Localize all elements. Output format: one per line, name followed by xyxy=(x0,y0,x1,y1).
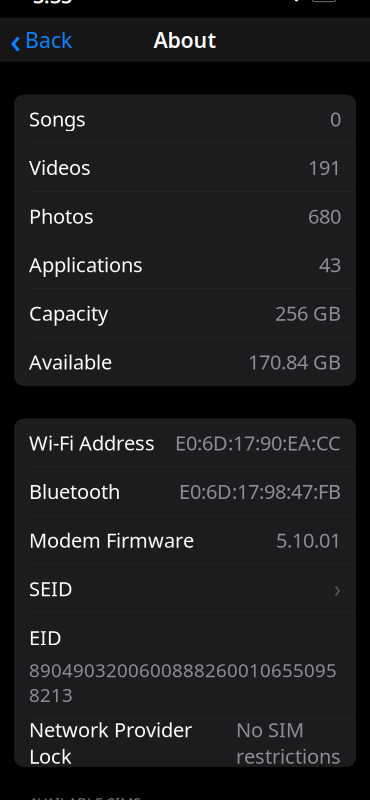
staticText: About xyxy=(153,25,216,54)
staticText: 3:33 xyxy=(33,0,72,9)
staticText: 43 xyxy=(319,251,341,278)
button[interactable]: Bluetooth xyxy=(14,467,356,515)
button[interactable]: Songs xyxy=(14,95,356,143)
staticText: 256 GB xyxy=(275,300,341,326)
staticText: E0:6D:17:90:EA:CC xyxy=(175,429,341,456)
button[interactable]: Capacity xyxy=(14,289,356,337)
button[interactable]: Modem Firmware xyxy=(14,516,356,564)
staticText: Bluetooth xyxy=(29,478,120,505)
staticText: ‹ xyxy=(10,17,21,63)
button[interactable]: Wi-Fi Address xyxy=(14,419,356,467)
staticText: 5.10.01 xyxy=(276,527,341,553)
staticText: Wi-Fi Address xyxy=(29,429,155,456)
staticText: Photos xyxy=(29,203,94,229)
staticText: Capacity xyxy=(29,300,108,326)
staticText: Back xyxy=(25,25,72,54)
staticText: 191 xyxy=(308,154,341,181)
staticText: Modem Firmware xyxy=(29,527,194,553)
staticText: › xyxy=(334,573,341,603)
staticText: Available xyxy=(29,348,112,375)
staticText: E0:6D:17:98:47:FB xyxy=(179,478,341,505)
staticText: SEID xyxy=(29,575,73,602)
staticText: No SIM restrictions xyxy=(236,716,341,769)
staticText: 170.84 GB xyxy=(248,348,341,375)
staticText: 0 xyxy=(330,105,341,132)
staticText: 89049032006008882600106550958213 xyxy=(29,658,337,707)
button[interactable]: Videos xyxy=(14,143,356,191)
staticText: EID xyxy=(29,624,62,651)
button[interactable]: Applications xyxy=(14,240,356,288)
staticText: Network Provider Lock xyxy=(29,716,192,769)
button[interactable]: SEID xyxy=(14,564,356,612)
button[interactable]: Photos xyxy=(14,192,356,240)
button[interactable]: ‹ xyxy=(0,18,82,62)
staticText: 680 xyxy=(308,203,341,229)
staticText: Songs xyxy=(29,105,86,132)
button[interactable]: Network Provider Lock xyxy=(14,719,356,767)
staticText: Videos xyxy=(29,154,91,181)
staticText: Applications xyxy=(29,251,143,278)
staticText: AVAILABLE SIMS xyxy=(29,793,141,800)
button[interactable]: Available xyxy=(14,338,356,386)
button[interactable]: EID xyxy=(14,613,356,718)
